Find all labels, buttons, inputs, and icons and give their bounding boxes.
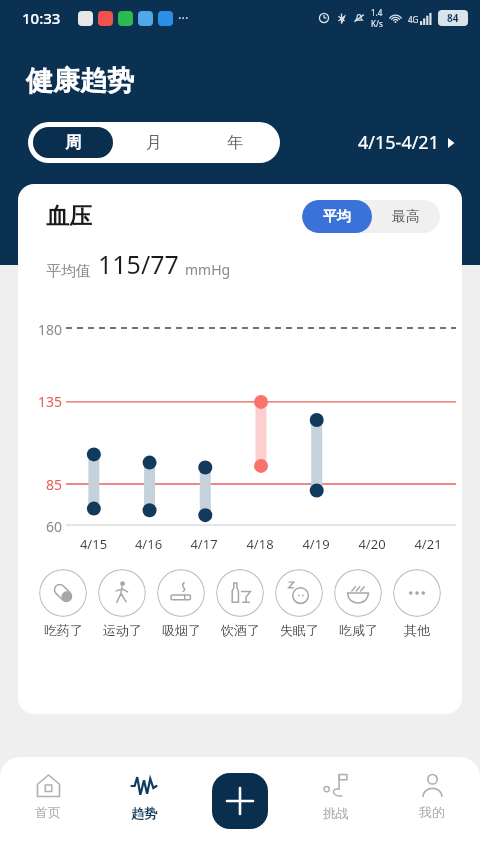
button[interactable]: 饮酒了 [216,567,264,640]
staticText: 运动了 [103,622,142,638]
staticText: 月 [146,133,162,153]
staticText: 4G [408,14,419,25]
button[interactable]: 挑战 [288,771,384,823]
staticText: 吸烟了 [162,622,201,638]
button[interactable]: 其他 [393,567,441,640]
button[interactable]: 失眠了 [275,567,323,640]
staticText: 4/15 [66,535,121,553]
button[interactable]: 吸烟了 [157,567,205,640]
staticText: 4/18 [232,535,288,553]
staticText: 平均 [323,208,351,226]
staticText: 我的 [419,804,445,820]
button[interactable]: Add record [212,773,268,829]
staticText: 最高 [392,208,420,226]
staticText: 1.4 [371,7,383,18]
staticText: 135 [18,392,62,411]
staticText: K/s [371,18,383,29]
staticText: 10:33 [22,8,61,28]
button[interactable]: 运动了 [98,567,146,640]
staticText: 4/19 [288,535,344,553]
button[interactable]: 吃咸了 [334,567,382,640]
staticText: 趋势 [131,805,157,821]
staticText: 60 [18,517,62,536]
staticText: 84 [447,11,459,25]
staticText: 4/21 [400,535,456,553]
button[interactable]: 平均 [302,200,372,233]
staticText: 4/16 [121,535,176,553]
staticText: 失眠了 [280,622,319,638]
staticText: 饮酒了 [221,622,260,638]
staticText: mmHg [185,260,231,279]
staticText: 其他 [404,622,430,638]
staticText: 平均值 [46,262,91,281]
button[interactable]: 月 [113,127,194,158]
button[interactable]: 首页 [0,771,96,822]
button[interactable]: 周 [33,127,113,158]
staticText: 180 [18,320,62,339]
button[interactable]: 我的 [384,771,480,822]
staticText: 健康趋势 [26,64,134,98]
button[interactable]: 吃药了 [39,567,87,640]
staticText: 85 [18,475,62,494]
staticText: 4/20 [344,535,400,553]
button[interactable]: 趋势 [96,771,192,823]
staticText: 吃药了 [44,622,83,638]
button[interactable]: 年 [194,127,275,158]
button[interactable]: 4/15-4/21 [352,124,462,161]
staticText: 年 [227,133,243,153]
staticText: 115/77 [98,247,179,281]
staticText: 吃咸了 [339,622,378,638]
staticText: 周 [65,133,81,153]
button[interactable]: 最高 [372,200,440,233]
staticText: 挑战 [323,805,349,821]
staticText: 4/17 [176,535,232,553]
staticText: 4/15-4/21 [358,130,439,155]
staticText: 首页 [35,804,61,820]
staticText: ··· [178,9,189,27]
staticText: 血压 [46,202,92,231]
